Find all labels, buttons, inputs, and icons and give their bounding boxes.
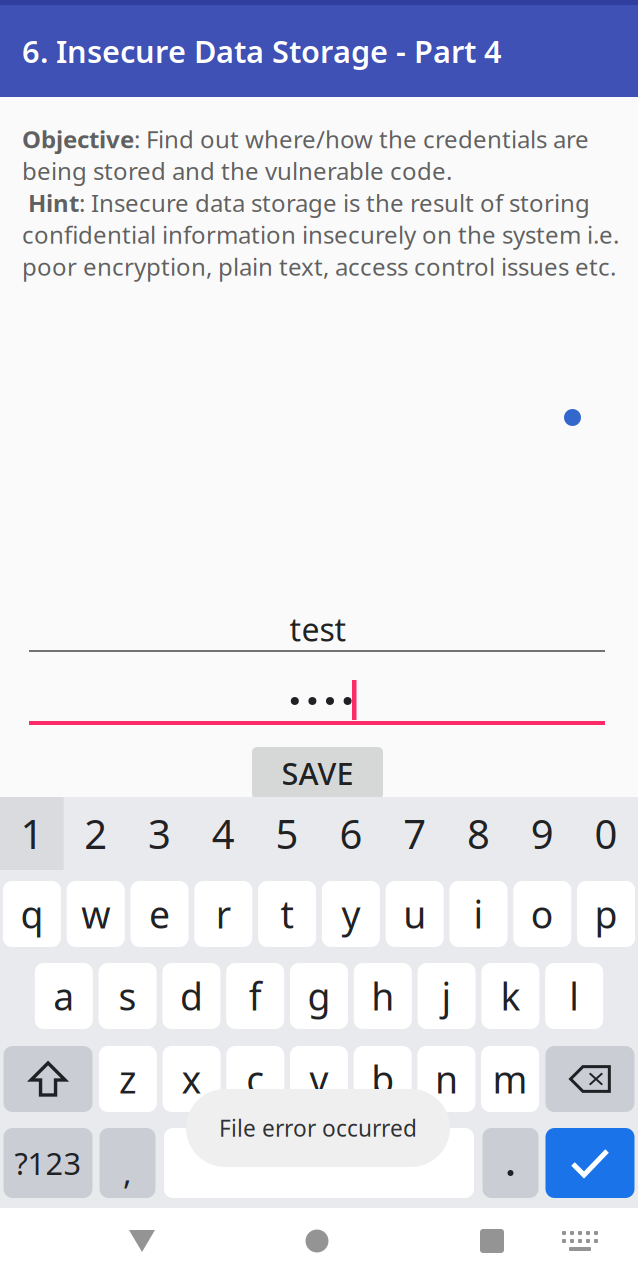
button[interactable]: p bbox=[574, 881, 638, 947]
button[interactable]: 5 bbox=[255, 797, 319, 870]
button[interactable]: Home bbox=[267, 1208, 367, 1274]
staticText: q bbox=[20, 889, 43, 939]
button[interactable]: 2 bbox=[64, 797, 128, 870]
staticText: f bbox=[249, 971, 262, 1021]
button[interactable]: Recent apps bbox=[442, 1208, 542, 1274]
button[interactable]: Comma bbox=[96, 1128, 159, 1198]
staticText: i bbox=[473, 889, 483, 939]
staticText: 6 bbox=[339, 807, 362, 860]
button[interactable]: 0 bbox=[574, 797, 638, 870]
staticText: Hint: Insecure data storage is the resul… bbox=[22, 187, 619, 282]
staticText: k bbox=[500, 971, 520, 1021]
button[interactable]: n bbox=[414, 1046, 478, 1112]
button[interactable]: SAVE bbox=[252, 747, 383, 799]
button[interactable]: Shift bbox=[0, 1046, 96, 1112]
button[interactable]: j bbox=[415, 963, 478, 1029]
button[interactable]: l bbox=[542, 963, 606, 1029]
button[interactable]: 3 bbox=[128, 797, 191, 870]
button[interactable]: Backspace bbox=[542, 1046, 638, 1112]
button[interactable]: h bbox=[351, 963, 415, 1029]
staticText: ?123 bbox=[14, 1143, 81, 1183]
staticText: s bbox=[119, 971, 137, 1021]
button[interactable]: f bbox=[223, 963, 287, 1029]
staticText: j bbox=[442, 971, 452, 1021]
button[interactable]: 1 bbox=[0, 797, 64, 870]
button[interactable]: w bbox=[64, 881, 128, 947]
button[interactable]: 7 bbox=[383, 797, 447, 870]
staticText: y bbox=[341, 889, 360, 939]
button[interactable]: k bbox=[478, 963, 542, 1029]
button[interactable]: b bbox=[351, 1046, 414, 1112]
staticText: SAVE bbox=[281, 753, 353, 793]
button[interactable]: q bbox=[0, 881, 64, 947]
button[interactable]: 9 bbox=[510, 797, 574, 870]
button[interactable]: g bbox=[287, 963, 351, 1029]
staticText: , bbox=[123, 1151, 132, 1193]
button[interactable]: e bbox=[128, 881, 191, 947]
staticText: 5 bbox=[276, 807, 299, 860]
staticText: u bbox=[403, 889, 426, 939]
button[interactable]: r bbox=[191, 881, 255, 947]
staticText: o bbox=[531, 889, 554, 939]
button[interactable]: i bbox=[447, 881, 510, 947]
button[interactable]: c bbox=[223, 1046, 287, 1112]
staticText: x bbox=[182, 1054, 202, 1104]
staticText: b bbox=[371, 1054, 394, 1104]
button[interactable]: Back bbox=[92, 1208, 192, 1274]
staticText: l bbox=[569, 971, 579, 1021]
staticText: test bbox=[289, 608, 346, 650]
staticText: d bbox=[180, 971, 203, 1021]
staticText: 0 bbox=[595, 807, 618, 860]
button[interactable]: y bbox=[319, 881, 383, 947]
staticText: t bbox=[281, 889, 294, 939]
staticText: 4 bbox=[212, 807, 235, 860]
button[interactable]: Period bbox=[479, 1128, 542, 1198]
staticText: e bbox=[149, 889, 170, 939]
button[interactable]: 6 bbox=[319, 797, 383, 870]
button[interactable]: Space bbox=[159, 1128, 479, 1198]
staticText: 7 bbox=[403, 807, 426, 860]
staticText: 1 bbox=[20, 807, 43, 860]
staticText: a bbox=[53, 971, 74, 1021]
staticText: h bbox=[371, 971, 394, 1021]
staticText: z bbox=[119, 1054, 137, 1104]
staticText: g bbox=[307, 971, 330, 1021]
button[interactable]: Switch keyboard bbox=[535, 1208, 625, 1274]
staticText: c bbox=[246, 1054, 264, 1104]
staticText: r bbox=[216, 889, 231, 939]
staticText: m bbox=[493, 1054, 528, 1104]
button[interactable]: 8 bbox=[447, 797, 510, 870]
button[interactable]: a bbox=[32, 963, 96, 1029]
button[interactable]: x bbox=[160, 1046, 223, 1112]
staticText: 8 bbox=[467, 807, 490, 860]
staticText: 2 bbox=[84, 807, 107, 860]
staticText: w bbox=[81, 889, 110, 939]
button[interactable]: m bbox=[478, 1046, 542, 1112]
button[interactable]: o bbox=[510, 881, 574, 947]
staticText: Objective: Find out where/how the creden… bbox=[22, 123, 589, 187]
staticText: 6. Insecure Data Storage - Part 4 bbox=[22, 31, 502, 71]
button[interactable]: Enter bbox=[542, 1128, 638, 1198]
staticText: 9 bbox=[531, 807, 554, 860]
button[interactable]: t bbox=[255, 881, 319, 947]
staticText: n bbox=[435, 1054, 458, 1104]
button[interactable]: z bbox=[96, 1046, 160, 1112]
button[interactable]: v bbox=[287, 1046, 351, 1112]
staticText: v bbox=[309, 1054, 328, 1104]
button[interactable]: Symbols bbox=[0, 1128, 96, 1198]
button[interactable]: d bbox=[159, 963, 223, 1029]
button[interactable]: s bbox=[96, 963, 159, 1029]
staticText: 3 bbox=[148, 807, 171, 860]
button[interactable]: 4 bbox=[191, 797, 255, 870]
button[interactable]: u bbox=[383, 881, 447, 947]
staticText: File error occurred bbox=[219, 1113, 417, 1143]
staticText: p bbox=[595, 889, 618, 939]
